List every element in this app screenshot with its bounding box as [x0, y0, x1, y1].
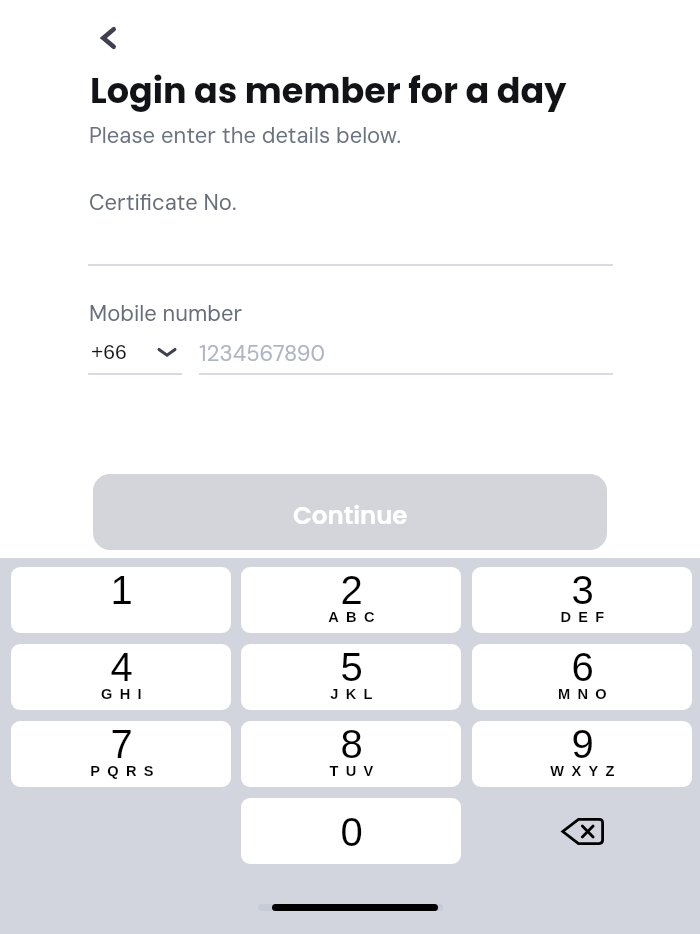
staticText: DEF [560, 609, 612, 625]
button[interactable]: 6 [472, 644, 692, 710]
staticText: ABC [328, 609, 382, 625]
button[interactable]: Country code +66 [88, 336, 182, 376]
staticText: WXYZ [550, 763, 622, 779]
staticText: 3 [571, 568, 594, 613]
button[interactable]: 9 [472, 721, 692, 787]
button[interactable]: 0 [241, 798, 461, 864]
button[interactable]: Continue [93, 474, 607, 550]
staticText: Login as member for a day [90, 66, 567, 115]
staticText: 1234567890 [199, 339, 325, 368]
staticText: 9 [571, 722, 594, 767]
staticText: 6 [571, 645, 594, 690]
staticText: TUV [329, 763, 381, 779]
staticText: 1 [110, 568, 133, 613]
button[interactable]: 7 [11, 721, 231, 787]
staticText: Certificate No. [89, 188, 237, 217]
staticText: GHI [101, 686, 149, 702]
staticText: MNO [558, 686, 614, 702]
button[interactable]: Delete [472, 798, 692, 864]
staticText: PQRS [90, 763, 161, 779]
button[interactable]: 8 [241, 721, 461, 787]
staticText: Mobile number [89, 299, 243, 328]
staticText: 7 [110, 722, 133, 767]
staticText: +66 [91, 340, 127, 363]
staticText: 8 [340, 722, 363, 767]
staticText: Please enter the details below. [89, 121, 401, 150]
button[interactable]: Back [86, 16, 130, 60]
staticText: 0 [340, 810, 363, 855]
button[interactable]: 4 [11, 644, 231, 710]
staticText: 5 [340, 645, 363, 690]
button[interactable]: 1 [11, 567, 231, 633]
button[interactable]: 2 [241, 567, 461, 633]
button[interactable]: 5 [241, 644, 461, 710]
staticText: 2 [340, 568, 363, 613]
staticText: 4 [110, 645, 133, 690]
button[interactable]: 3 [472, 567, 692, 633]
staticText: JKL [330, 686, 380, 702]
staticText: Continue [293, 498, 408, 532]
